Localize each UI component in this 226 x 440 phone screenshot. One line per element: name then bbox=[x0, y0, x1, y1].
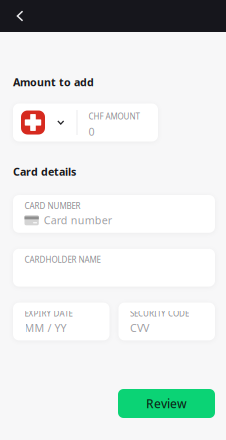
staticText: CARD NUMBER bbox=[24, 200, 80, 211]
staticText: Card details bbox=[13, 164, 76, 179]
staticText: MM / YY bbox=[24, 321, 66, 335]
staticText: Card number bbox=[44, 213, 112, 227]
button[interactable]: Back bbox=[0, 0, 40, 32]
staticText: CARDHOLDER NAME bbox=[24, 254, 100, 265]
button[interactable]: EXPIRY DATE bbox=[13, 303, 109, 340]
staticText: Amount to add bbox=[13, 75, 94, 89]
staticText: EXPIRY DATE bbox=[24, 308, 72, 319]
staticText: SECURITY CODE bbox=[130, 308, 189, 319]
staticText: CHF AMOUNT bbox=[88, 111, 139, 122]
button[interactable]: Review bbox=[118, 389, 215, 418]
button[interactable]: CARD NUMBER bbox=[13, 195, 215, 233]
staticText: Review bbox=[146, 395, 187, 411]
staticText: CVV bbox=[130, 321, 149, 335]
button[interactable]: Select currency bbox=[13, 103, 76, 141]
staticText: 0 bbox=[88, 125, 94, 139]
button[interactable]: SECURITY CODE bbox=[118, 303, 215, 340]
button[interactable]: CHF amount bbox=[77, 103, 158, 141]
button[interactable]: CARDHOLDER NAME bbox=[13, 249, 215, 287]
